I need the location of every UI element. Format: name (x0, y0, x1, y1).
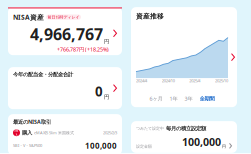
staticText: 設定金額 (136, 144, 152, 149)
staticText: 今年の配当金・分配金合計 (13, 71, 73, 78)
staticText: 100,000 (182, 135, 221, 149)
staticText: 2024/10 (162, 78, 175, 83)
button[interactable]: 6ヶ月 (149, 95, 162, 102)
staticText: 全期間 (199, 95, 214, 102)
staticText: 円 (104, 94, 109, 100)
staticText: 100,000 (85, 140, 117, 151)
staticText: 2025/10 (215, 78, 228, 83)
staticText: 6ヶ月 (149, 95, 162, 102)
staticText: 3年 (184, 95, 192, 102)
button[interactable]: 今年の配当金・分配金合計 (8, 67, 122, 109)
staticText: eMAXIS Slim 米国株式 (34, 130, 74, 135)
button[interactable]: 3年 (184, 95, 192, 102)
button[interactable]: NISA資産 (8, 7, 122, 55)
button[interactable]: 全期間 (199, 95, 214, 102)
staticText: つみたて設定中 (136, 126, 164, 131)
staticText: 前日15時ディレイ (47, 14, 79, 20)
staticText: 2025/2/3 (103, 130, 117, 135)
staticText: NISA資産 (13, 13, 44, 21)
staticText: 最近のNISA取引 (13, 118, 51, 125)
staticText: 毎月の積立設定額 (166, 125, 206, 132)
staticText: 購入 (22, 129, 32, 136)
button[interactable]: 1年 (169, 95, 177, 102)
staticText: 2025/4 (189, 78, 200, 83)
staticText: 4,966,767 (30, 23, 103, 45)
staticText: 購入 (14, 128, 18, 138)
staticText: 資産推移 (136, 12, 164, 20)
button[interactable]: つみたて設定中 (131, 121, 237, 153)
staticText: SBI・V・S&P500 (13, 143, 42, 148)
staticText: 1年 (169, 95, 177, 102)
staticText: 2024/4 (136, 78, 147, 83)
staticText: 0 (95, 83, 103, 100)
staticText: 円 (222, 144, 226, 149)
staticText: 円 (104, 38, 109, 45)
staticText: +766,787円 (+18.25%) (57, 46, 109, 53)
